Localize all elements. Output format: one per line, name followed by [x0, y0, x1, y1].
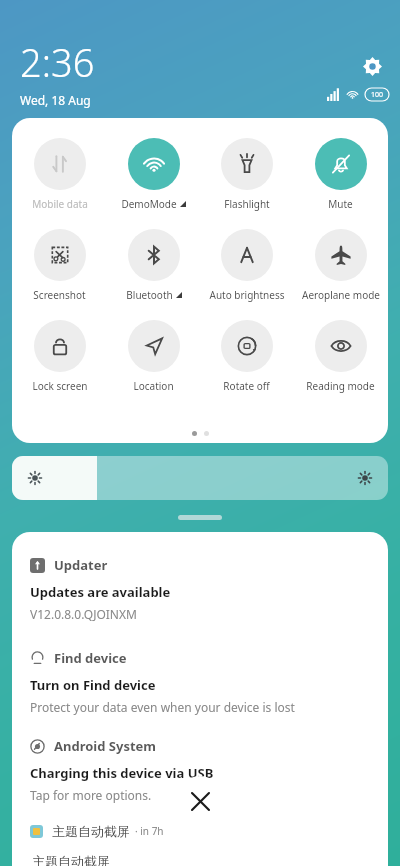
button[interactable]: 主题自动截屏: [30, 823, 370, 839]
staticText: V12.0.8.0.QJOINXM: [30, 606, 137, 622]
staticText: Location: [133, 379, 174, 393]
staticText: Flashlight: [224, 197, 270, 211]
staticText: Mobile data: [32, 197, 88, 211]
button[interactable]: Settings: [358, 52, 386, 80]
staticText: 主题自动截屏: [32, 853, 110, 866]
staticText: Updates are available: [30, 583, 171, 601]
button[interactable]: Android System: [30, 737, 370, 755]
button[interactable]: Close: [175, 776, 225, 826]
staticText: Android System: [54, 737, 157, 755]
button[interactable]: Lock screen: [14, 318, 105, 395]
staticText: Rotate off: [223, 379, 270, 393]
button[interactable]: Screenshot: [14, 227, 105, 304]
button[interactable]: [12, 456, 388, 500]
button[interactable]: Bluetooth: [108, 227, 199, 304]
button[interactable]: Auto brightness: [201, 227, 292, 304]
button[interactable]: Find device: [30, 649, 370, 667]
staticText: Auto brightness: [209, 288, 285, 302]
staticText: Bluetooth: [126, 288, 173, 302]
staticText: 2:36: [20, 36, 95, 88]
staticText: Tap for more options.: [30, 787, 152, 803]
staticText: Updater: [54, 556, 108, 574]
staticText: Mute: [328, 197, 353, 211]
staticText: Wed, 18 Aug: [20, 92, 91, 108]
button[interactable]: Updater: [30, 556, 370, 574]
button[interactable]: Reading mode: [295, 318, 386, 395]
button[interactable]: Location: [108, 318, 199, 395]
button[interactable]: Flashlight: [201, 136, 292, 213]
staticText: 100: [371, 90, 384, 100]
staticText: Protect your data even when your device …: [30, 699, 295, 715]
staticText: DemoMode: [121, 197, 177, 211]
staticText: Find device: [54, 649, 127, 667]
staticText: Turn on Find device: [30, 676, 156, 694]
staticText: Screenshot: [33, 288, 86, 302]
staticText: 主题自动截屏: [52, 823, 130, 839]
staticText: Charging this device via USB: [30, 764, 214, 782]
button[interactable]: Mute: [295, 136, 386, 213]
button[interactable]: DemoMode: [108, 136, 199, 213]
staticText: · in 7h: [135, 824, 164, 838]
staticText: Lock screen: [32, 379, 88, 393]
staticText: Aeroplane mode: [302, 288, 380, 302]
button[interactable]: Rotate off: [201, 318, 292, 395]
button[interactable]: Mobile data: [14, 136, 105, 213]
staticText: Reading mode: [306, 379, 375, 393]
button[interactable]: Aeroplane mode: [295, 227, 386, 304]
